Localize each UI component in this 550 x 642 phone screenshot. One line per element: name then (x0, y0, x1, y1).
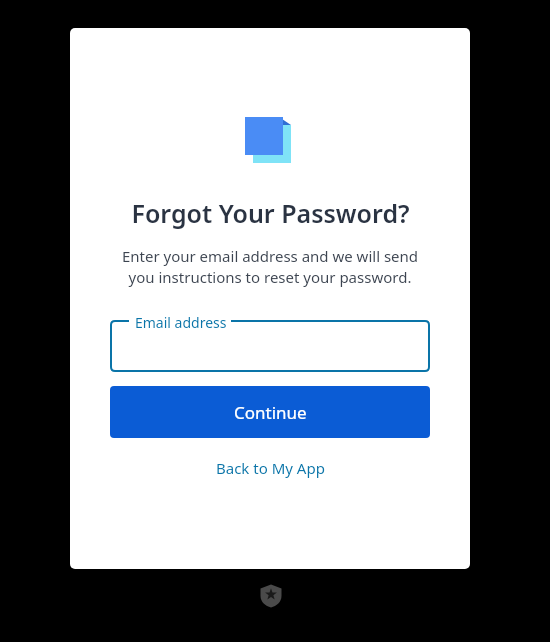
button[interactable]: Email address (110, 310, 430, 372)
staticText: Back to My App (216, 458, 325, 478)
button[interactable]: Continue (110, 386, 430, 438)
other: Auth0 badge (258, 583, 284, 609)
staticText: Enter your email address and we will sen… (115, 246, 425, 288)
button[interactable]: Back to My App (208, 452, 333, 484)
staticText: Continue (234, 401, 307, 424)
staticText: Email address (135, 313, 227, 332)
staticText: Forgot Your Password? (131, 196, 410, 230)
